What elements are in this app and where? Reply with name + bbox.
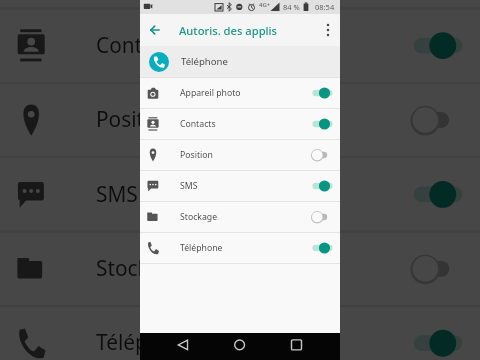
button[interactable]: Contacts: [0, 10, 480, 82]
button[interactable]: Appareil photo: [0, 0, 480, 7]
button[interactable]: Stockage: [140, 202, 340, 232]
button[interactable]: Enabled: [309, 82, 335, 104]
staticText: Position: [96, 106, 175, 134]
staticText: Stockage: [180, 211, 218, 223]
staticText: Téléphone: [181, 55, 228, 68]
button[interactable]: Téléphone: [0, 307, 480, 360]
staticText: Stockage: [96, 254, 187, 283]
button[interactable]: Enabled: [406, 168, 468, 221]
button[interactable]: Téléphone: [140, 46, 340, 77]
button[interactable]: SMS: [140, 171, 340, 201]
button[interactable]: SMS: [0, 158, 480, 230]
button[interactable]: Stockage: [0, 233, 480, 305]
button[interactable]: Disabled: [309, 144, 335, 166]
staticText: Autoris. des applis: [179, 23, 278, 38]
staticText: Contacts: [96, 31, 182, 60]
staticText: Position: [180, 149, 213, 161]
button[interactable]: Back: [144, 19, 166, 41]
button[interactable]: Back: [171, 335, 195, 359]
button[interactable]: Home: [228, 335, 252, 359]
staticText: Téléphone: [96, 329, 199, 358]
button[interactable]: Enabled: [309, 175, 335, 197]
button[interactable]: Position: [0, 84, 480, 156]
staticText: 4G+: [259, 1, 271, 9]
button[interactable]: Enabled: [309, 113, 335, 135]
button[interactable]: Disabled: [406, 242, 468, 295]
button[interactable]: Disabled: [309, 206, 335, 228]
button[interactable]: Contacts: [140, 109, 340, 139]
staticText: 84 %: [283, 2, 300, 12]
staticText: 08:54: [315, 2, 335, 12]
button[interactable]: Enabled: [309, 237, 335, 259]
staticText: Appareil photo: [180, 87, 241, 99]
button[interactable]: Enabled: [406, 19, 468, 72]
button[interactable]: Enabled: [406, 317, 468, 360]
button[interactable]: Recent apps: [285, 335, 309, 359]
button[interactable]: More options: [317, 19, 339, 41]
button[interactable]: Téléphone: [140, 233, 340, 263]
staticText: SMS: [96, 180, 139, 209]
staticText: Contacts: [180, 118, 216, 130]
button[interactable]: Position: [140, 140, 340, 170]
staticText: Téléphone: [180, 242, 223, 254]
button[interactable]: Appareil photo: [140, 78, 340, 108]
staticText: SMS: [180, 180, 198, 192]
button[interactable]: Disabled: [406, 94, 468, 146]
